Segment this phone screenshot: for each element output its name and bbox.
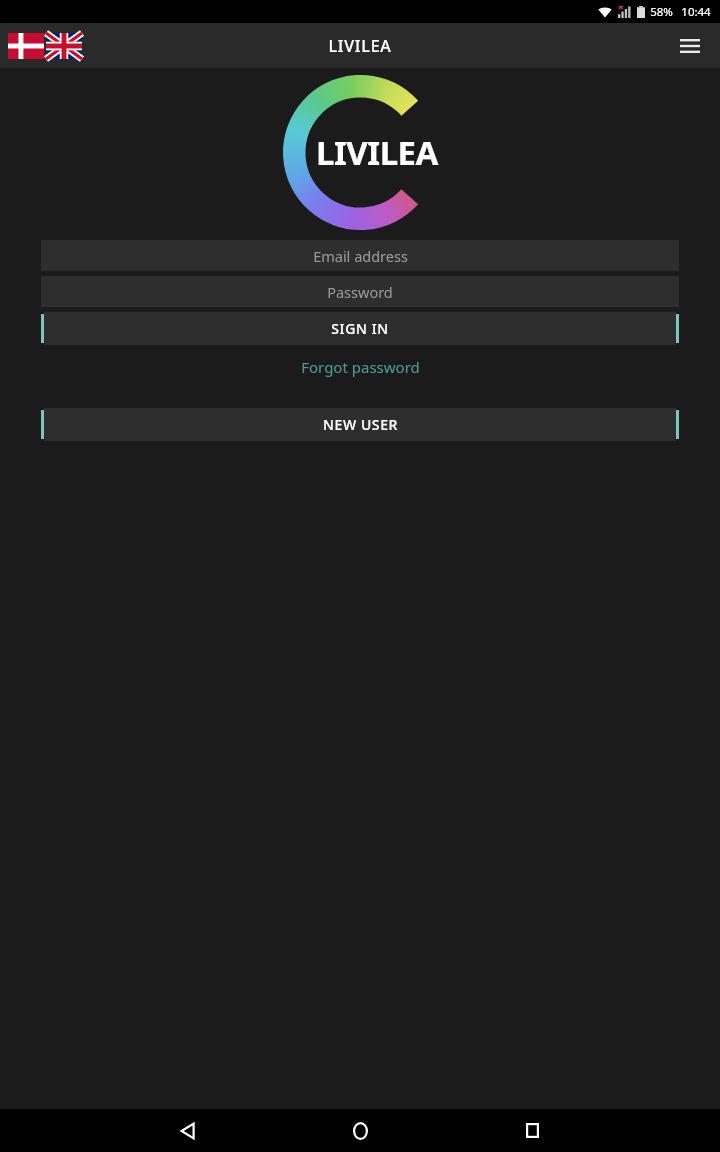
- button[interactable]: Email address: [41, 240, 679, 271]
- button[interactable]: Menu: [672, 28, 708, 64]
- staticText: Password: [327, 282, 393, 302]
- button[interactable]: Password: [41, 276, 679, 307]
- staticText: Email address: [313, 246, 408, 266]
- button[interactable]: Forgot password: [41, 353, 679, 381]
- button[interactable]: Danish: [8, 33, 44, 59]
- button[interactable]: SIGN IN: [41, 312, 679, 345]
- button[interactable]: Recent apps: [510, 1109, 554, 1152]
- button[interactable]: English: [46, 33, 82, 59]
- button[interactable]: Back: [166, 1109, 210, 1152]
- button[interactable]: NEW USER: [41, 408, 679, 441]
- staticText: SIGN IN: [331, 319, 389, 338]
- staticText: NEW USER: [323, 415, 398, 434]
- button[interactable]: Home: [338, 1109, 382, 1152]
- staticText: 10:44: [681, 4, 711, 20]
- staticText: LIVILEA: [316, 130, 438, 175]
- staticText: 58%: [650, 4, 673, 20]
- staticText: Forgot password: [301, 357, 420, 377]
- staticText: LIVILEA: [328, 35, 392, 57]
